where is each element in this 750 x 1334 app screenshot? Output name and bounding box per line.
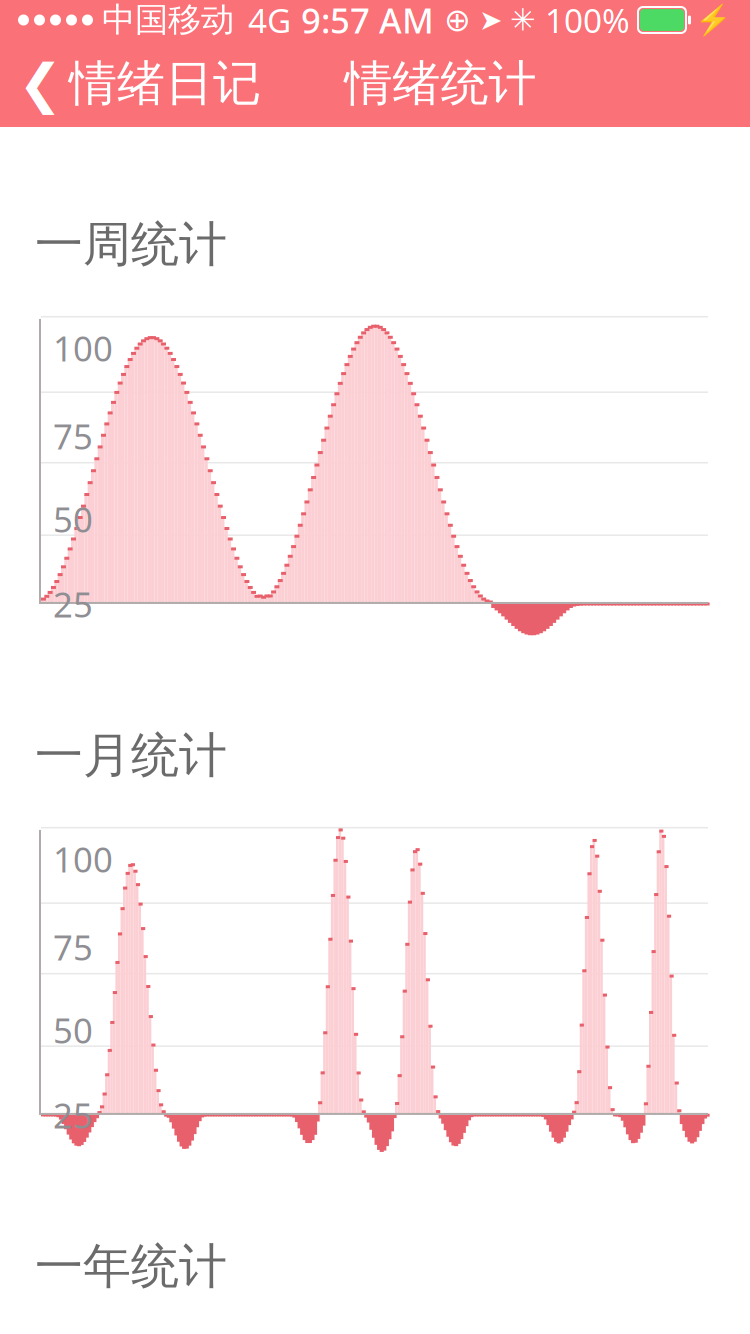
staticText: 中国移动 xyxy=(102,0,234,40)
staticText: 情绪日记 xyxy=(69,54,261,113)
staticText: ⚡ xyxy=(695,3,732,37)
staticText: 50 xyxy=(53,1007,93,1053)
staticText: 25 xyxy=(53,581,93,627)
staticText: 一月统计 xyxy=(35,726,227,785)
button[interactable]: ❮ xyxy=(0,45,261,122)
staticText: 100% xyxy=(545,0,630,42)
staticText: 一年统计 xyxy=(35,1237,227,1296)
staticText: 75 xyxy=(53,924,93,970)
staticText: 75 xyxy=(53,413,93,459)
staticText: ➤ xyxy=(479,4,502,36)
staticText: 情绪统计 xyxy=(344,54,536,113)
staticText: 一周统计 xyxy=(35,215,227,274)
staticText: 9:57 AM xyxy=(301,0,434,43)
staticText: 100 xyxy=(53,836,113,882)
staticText: 4G xyxy=(248,0,291,42)
staticText: ❮ xyxy=(18,53,63,114)
staticText: 25 xyxy=(53,1092,93,1138)
staticText: ⊕ xyxy=(444,2,471,38)
staticText: 100 xyxy=(53,325,113,371)
staticText: 50 xyxy=(53,496,93,542)
staticText: ✳ xyxy=(510,3,536,37)
